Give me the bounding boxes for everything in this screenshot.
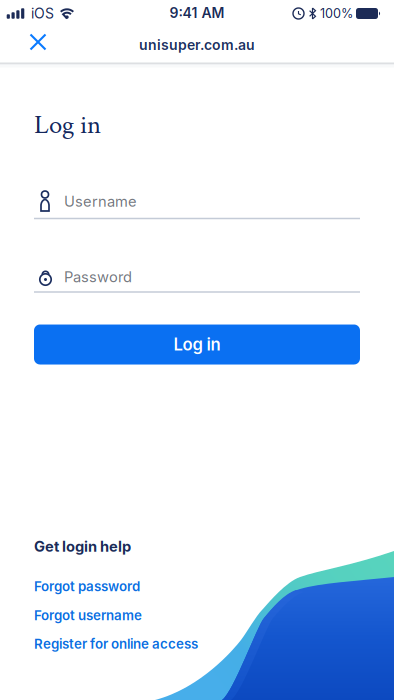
- staticText: Register for online access: [34, 636, 198, 652]
- button[interactable]: Forgot username: [34, 607, 142, 623]
- staticText: iOS: [31, 5, 54, 22]
- staticText: Log in: [34, 108, 101, 142]
- button[interactable]: [18, 22, 58, 62]
- staticText: Username: [64, 193, 137, 210]
- staticText: 100%: [320, 6, 353, 21]
- staticText: Get login help: [34, 538, 131, 555]
- button[interactable]: Log in: [34, 324, 360, 364]
- staticText: Password: [64, 268, 132, 286]
- button[interactable]: Forgot password: [34, 578, 140, 594]
- staticText: Forgot password: [34, 578, 140, 594]
- staticText: Forgot username: [34, 607, 142, 623]
- staticText: Log in: [173, 334, 220, 355]
- staticText: unisuper.com.au: [139, 36, 255, 53]
- button[interactable]: Register for online access: [34, 636, 198, 652]
- staticText: 9:41 AM: [169, 4, 224, 21]
